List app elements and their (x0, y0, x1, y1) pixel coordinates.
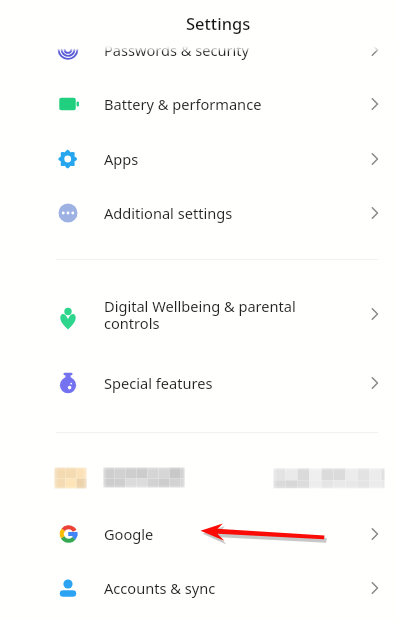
staticText: Additional settings (104, 203, 233, 223)
button[interactable]: Additional settings (0, 186, 397, 240)
button[interactable]: Special features (0, 356, 397, 410)
staticText: Google (104, 524, 154, 544)
staticText: Accounts & sync (104, 578, 216, 598)
staticText: Special features (104, 373, 213, 393)
staticText: Settings (186, 12, 251, 34)
button[interactable]: Passwords & security (0, 23, 397, 77)
button[interactable]: Accounts & sync (0, 561, 397, 615)
staticText: Passwords & security (104, 40, 250, 60)
button[interactable]: Apps (0, 132, 397, 186)
staticText: Apps (104, 149, 139, 169)
staticText: Digital Wellbeing & parental controls (104, 296, 296, 333)
button[interactable]: Battery & performance (0, 77, 397, 131)
button[interactable]: Google (0, 507, 397, 561)
staticText: Battery & performance (104, 94, 262, 114)
button[interactable]: Digital Wellbeing & parental controls (0, 287, 397, 341)
